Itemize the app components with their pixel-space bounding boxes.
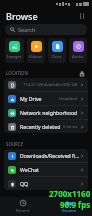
staticText: 90.9 fps [60, 199, 91, 210]
staticText: Search [18, 26, 36, 33]
button[interactable]: Docs [48, 38, 66, 63]
button[interactable]: WeChat [4, 163, 88, 176]
staticText: LOCATION [6, 70, 28, 76]
staticText: 114.21 GB Available/256 GB [23, 82, 78, 88]
button[interactable]: Network neighborhood [4, 106, 88, 119]
button[interactable]: Recent [0, 197, 46, 216]
button[interactable]: QQ [4, 177, 88, 190]
staticText: Unadded [59, 96, 78, 102]
button[interactable]: Recently deleted [4, 120, 88, 133]
button[interactable]: Browse [46, 197, 92, 216]
button[interactable]: Search [5, 24, 87, 35]
staticText: WeChat [20, 166, 80, 173]
staticText: Docs [52, 54, 62, 60]
button[interactable]: Images [5, 38, 24, 63]
button[interactable]: Downloads/Received files [4, 149, 88, 162]
staticText: SOURCE [6, 141, 24, 147]
staticText: 2700x1160 [49, 188, 91, 199]
staticText: Network neighborhood [20, 109, 80, 116]
staticText: Images [7, 54, 22, 60]
staticText: Browse [6, 10, 38, 22]
staticText: QQ [20, 180, 80, 187]
staticText: Audio [72, 54, 84, 60]
staticText: Browse [62, 208, 77, 214]
button[interactable]: Phone [4, 78, 88, 91]
button[interactable]: Storage analysis [77, 69, 86, 78]
button[interactable]: My Drive [4, 92, 88, 105]
button[interactable]: More options [76, 10, 88, 22]
staticText: Downloads/Received files [20, 152, 80, 159]
staticText: Videos [29, 54, 43, 60]
button[interactable]: Videos [27, 38, 45, 63]
staticText: My Drive [20, 95, 59, 102]
staticText: 0 items [63, 124, 78, 130]
button[interactable]: Audio [69, 38, 87, 63]
staticText: Recent [16, 208, 30, 214]
staticText: Recently deleted [20, 123, 63, 130]
